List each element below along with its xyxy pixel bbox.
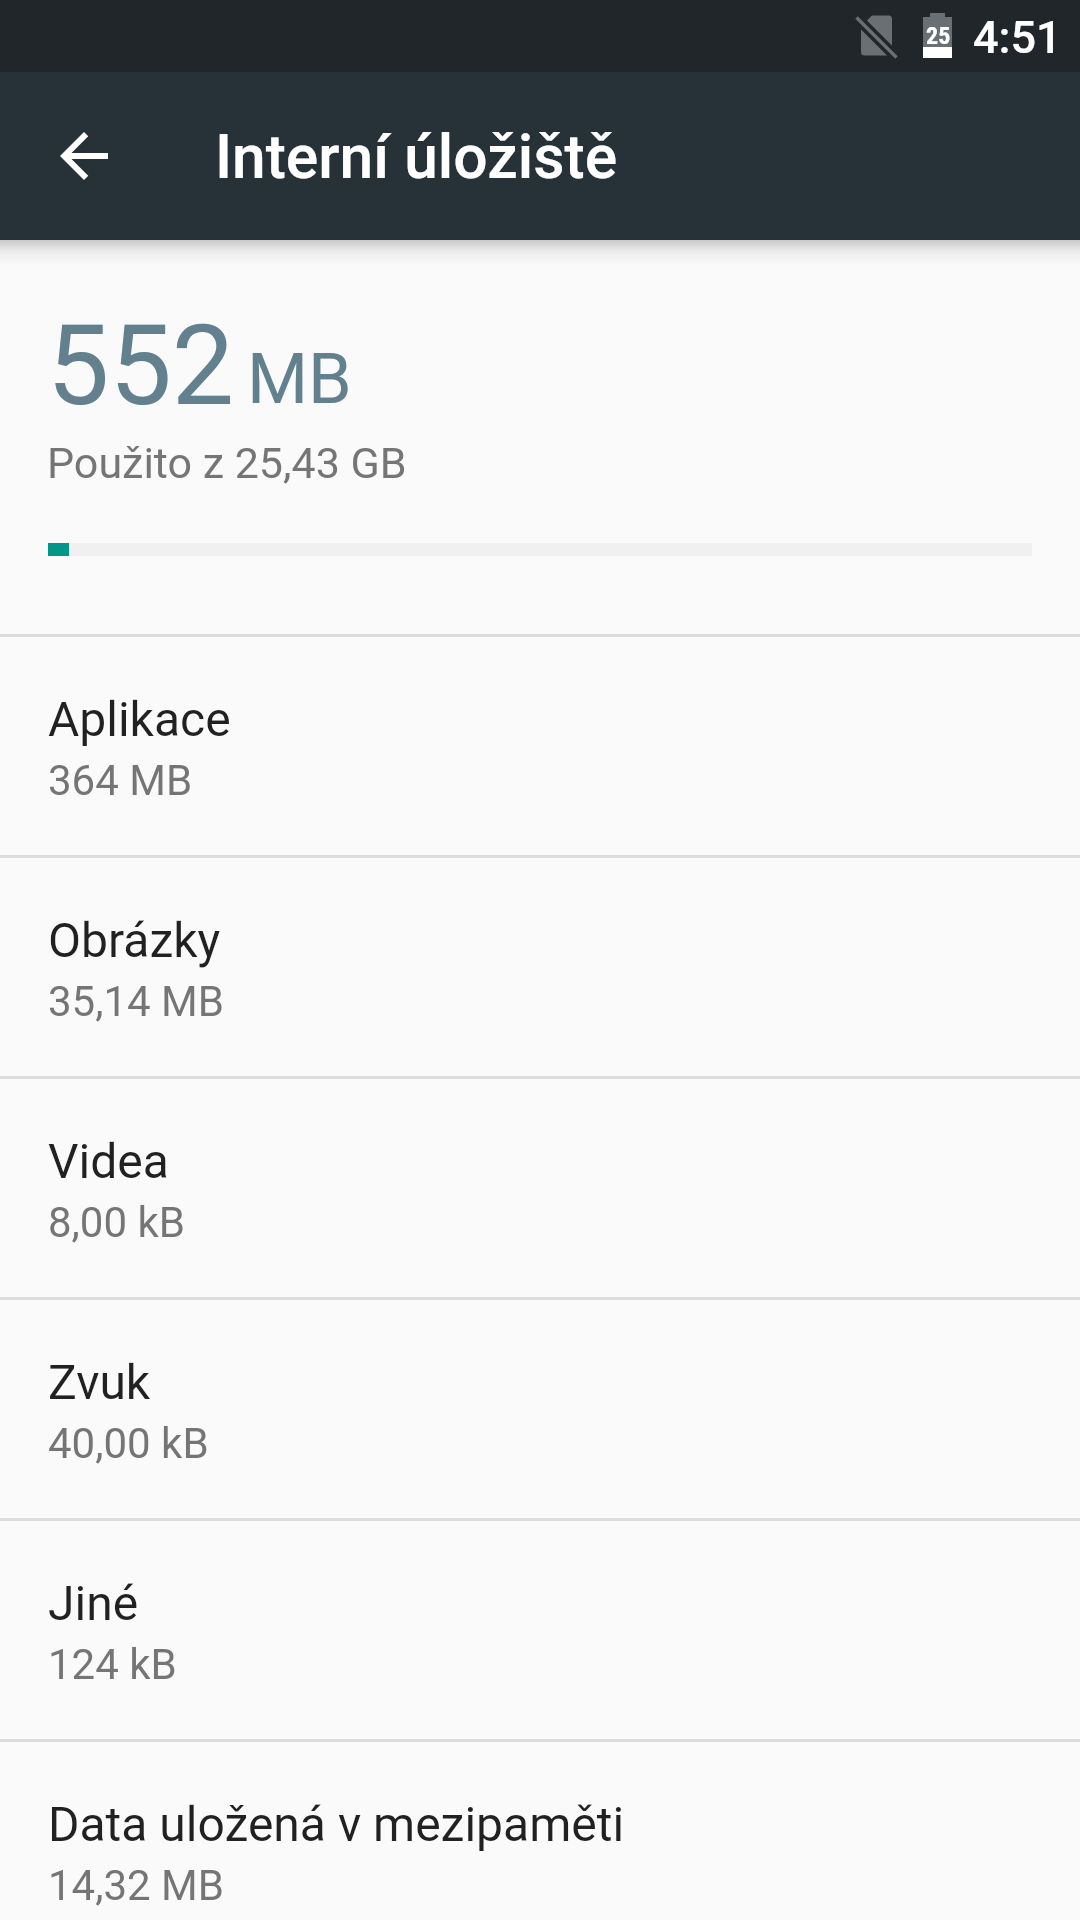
staticText: 8,00 kB — [48, 1198, 185, 1247]
staticText: 124 kB — [48, 1640, 177, 1689]
button[interactable]: Obrázky — [0, 856, 1080, 1077]
button[interactable]: Videa — [0, 1077, 1080, 1298]
staticText: Interní úložiště — [215, 122, 618, 193]
staticText: Použito z 25,43 GB — [47, 438, 407, 488]
button[interactable]: Zvuk — [0, 1298, 1080, 1519]
button[interactable]: Aplikace — [0, 635, 1080, 856]
staticText: 35,14 MB — [48, 977, 224, 1026]
button[interactable]: Jiné — [0, 1519, 1080, 1740]
staticText: Videa — [48, 1133, 169, 1189]
staticText: 25 — [926, 22, 951, 50]
staticText: Obrázky — [48, 912, 221, 968]
staticText: Aplikace — [48, 691, 231, 747]
staticText: Zvuk — [48, 1354, 151, 1410]
staticText: 364 MB — [48, 756, 193, 805]
staticText: 552 — [47, 301, 235, 431]
staticText: MB — [247, 338, 352, 420]
button[interactable]: Back — [12, 84, 156, 228]
staticText: 40,00 kB — [48, 1419, 209, 1468]
button[interactable]: Data uložená v mezipaměti — [0, 1740, 1080, 1920]
staticText: 14,32 MB — [48, 1861, 224, 1910]
staticText: 4:51 — [973, 11, 1062, 64]
staticText: Data uložená v mezipaměti — [48, 1796, 625, 1852]
staticText: Jiné — [48, 1575, 139, 1631]
